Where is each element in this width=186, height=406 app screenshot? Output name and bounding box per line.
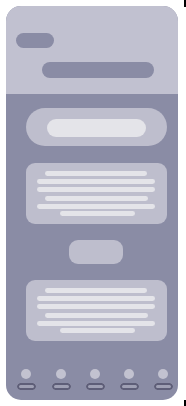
button[interactable]: Filter [6,6,60,30]
button[interactable]: Search [26,108,167,146]
button[interactable]: Create [78,363,112,395]
button[interactable]: Profile [146,363,178,395]
button[interactable] [26,280,167,341]
button[interactable]: Search [44,363,78,395]
button[interactable]: Activity [112,363,146,395]
button[interactable] [26,163,167,224]
button[interactable]: Home [9,363,43,395]
button[interactable]: Navigate back [6,6,44,21]
button[interactable] [6,6,118,22]
